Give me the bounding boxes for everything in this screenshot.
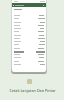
- button[interactable]: [12, 0, 46, 72]
- button[interactable]: App icon: [27, 79, 32, 84]
- button[interactable]: Cetak Lanjutan Dan Pintar: [1, 88, 63, 93]
- staticText: Cetak Lanjutan Dan Pintar: [9, 88, 56, 93]
